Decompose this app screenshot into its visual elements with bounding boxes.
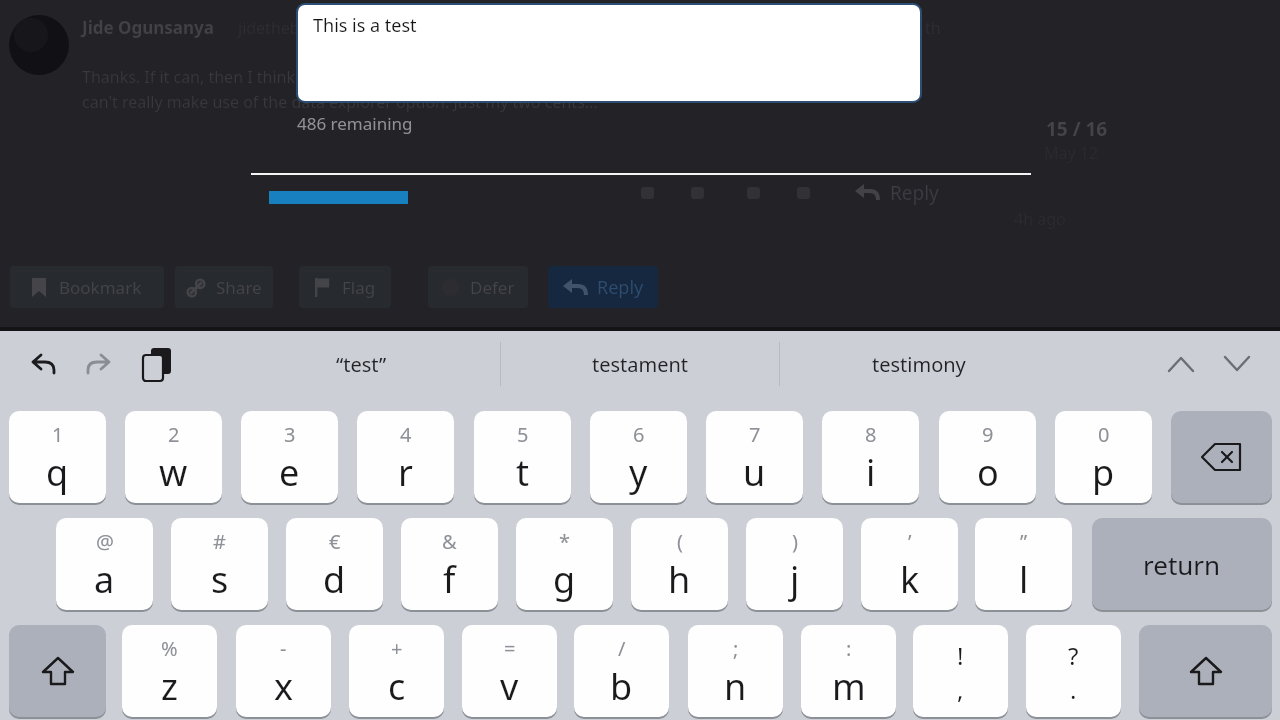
staticText: r: [398, 448, 413, 497]
button[interactable]: /: [574, 625, 669, 717]
button[interactable]: Share: [175, 266, 273, 308]
staticText: 9: [982, 421, 994, 448]
staticText: Flag: [342, 276, 376, 299]
staticText: o: [977, 448, 999, 497]
button[interactable]: testimony: [839, 344, 999, 384]
staticText: %: [161, 635, 178, 662]
button[interactable]: ’: [861, 518, 958, 610]
button[interactable]: =: [462, 625, 557, 717]
staticText: l: [1019, 555, 1029, 604]
staticText: jidetheblogger: [238, 17, 349, 39]
button[interactable]: ): [746, 518, 843, 610]
staticText: ?: [1068, 639, 1079, 672]
staticText: b: [610, 662, 633, 711]
staticText: w: [159, 448, 188, 497]
staticText: c: [388, 662, 406, 711]
staticText: 4: [400, 421, 412, 448]
button[interactable]: This is a test: [298, 5, 920, 101]
button[interactable]: 9: [939, 411, 1036, 503]
button[interactable]: 3: [241, 411, 338, 503]
staticText: ”: [1020, 528, 1028, 555]
staticText: (: [677, 528, 683, 555]
button[interactable]: ”: [975, 518, 1072, 610]
staticText: v: [500, 662, 519, 711]
button[interactable]: *: [516, 518, 613, 610]
button[interactable]: [9, 625, 106, 717]
button[interactable]: Defer: [428, 266, 528, 308]
button[interactable]: 1: [9, 411, 106, 503]
button[interactable]: #: [171, 518, 268, 610]
staticText: This is a test: [313, 13, 417, 38]
button[interactable]: 2: [125, 411, 222, 503]
button[interactable]: [1167, 355, 1195, 373]
button[interactable]: return: [1092, 518, 1272, 610]
button[interactable]: [1223, 355, 1251, 373]
staticText: &: [442, 528, 457, 555]
staticText: ,: [957, 673, 964, 706]
button[interactable]: “test”: [281, 344, 441, 384]
staticText: z: [161, 662, 178, 711]
staticText: h: [668, 555, 691, 604]
button[interactable]: [141, 347, 175, 381]
staticText: 15 / 16: [1046, 116, 1108, 142]
button[interactable]: &: [401, 518, 498, 610]
staticText: 8: [865, 421, 877, 448]
button[interactable]: €: [286, 518, 383, 610]
staticText: return: [1143, 547, 1221, 582]
staticText: ): [792, 528, 798, 555]
staticText: Reply: [890, 180, 939, 206]
button[interactable]: !: [913, 625, 1008, 717]
button[interactable]: ?: [1026, 625, 1121, 717]
staticText: Reply: [597, 275, 644, 300]
button[interactable]: testament: [560, 344, 720, 384]
button[interactable]: [1171, 411, 1272, 503]
button[interactable]: 4: [357, 411, 454, 503]
staticText: m: [832, 662, 866, 711]
staticText: Defer: [470, 276, 515, 299]
staticText: y: [629, 448, 648, 497]
staticText: ;: [733, 635, 739, 662]
staticText: @: [96, 528, 114, 555]
staticText: t: [516, 448, 529, 497]
button[interactable]: Flag: [299, 266, 391, 308]
staticText: s: [211, 555, 229, 604]
button[interactable]: :: [801, 625, 896, 717]
staticText: Thanks. If it can, then I think members …: [82, 66, 460, 88]
staticText: Jide Ogunsanya: [82, 16, 214, 39]
staticText: p: [1092, 448, 1115, 497]
button[interactable]: (: [631, 518, 728, 610]
button[interactable]: 6: [590, 411, 687, 503]
button[interactable]: Bookmark: [10, 266, 164, 308]
button[interactable]: Reply: [548, 266, 658, 308]
staticText: /: [618, 635, 626, 662]
button[interactable]: %: [122, 625, 217, 717]
staticText: q: [46, 448, 69, 497]
staticText: €: [329, 528, 341, 555]
button[interactable]: @: [56, 518, 153, 610]
staticText: 7: [749, 421, 761, 448]
button[interactable]: ;: [688, 625, 783, 717]
button[interactable]: 8: [822, 411, 919, 503]
staticText: *: [559, 528, 571, 555]
staticText: -: [280, 635, 287, 662]
staticText: “test”: [336, 351, 387, 378]
staticText: a: [94, 555, 115, 604]
staticText: Bookmark: [59, 276, 142, 299]
button[interactable]: 0: [1055, 411, 1152, 503]
staticText: can't really make use of the data explor…: [82, 91, 598, 113]
button[interactable]: -: [236, 625, 331, 717]
staticText: x: [274, 662, 294, 711]
button[interactable]: [1139, 625, 1272, 717]
button[interactable]: [29, 352, 57, 376]
staticText: e: [279, 448, 300, 497]
staticText: th: [925, 17, 941, 39]
button[interactable]: +: [349, 625, 444, 717]
button[interactable]: [85, 352, 113, 376]
staticText: .: [1070, 673, 1077, 706]
staticText: u: [743, 448, 766, 497]
button[interactable]: 5: [474, 411, 571, 503]
staticText: #: [213, 528, 226, 555]
button[interactable]: 7: [706, 411, 803, 503]
